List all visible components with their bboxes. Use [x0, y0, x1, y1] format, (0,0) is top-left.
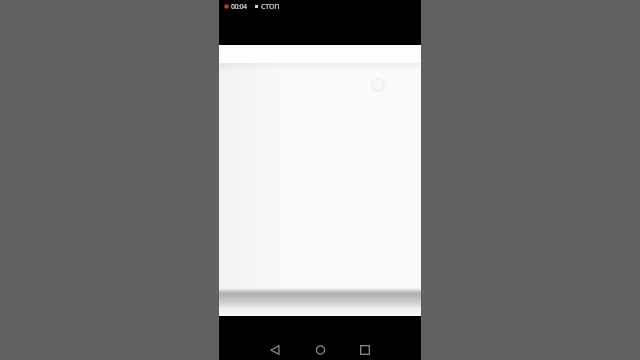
button[interactable]: Home [308, 338, 332, 360]
button[interactable]: СТОП [255, 2, 280, 11]
button[interactable]: Recent apps [353, 338, 377, 360]
staticText: СТОП [261, 2, 280, 11]
staticText: 00:04 [231, 2, 247, 11]
button[interactable]: Back [263, 338, 287, 360]
other: Recording [224, 4, 229, 9]
